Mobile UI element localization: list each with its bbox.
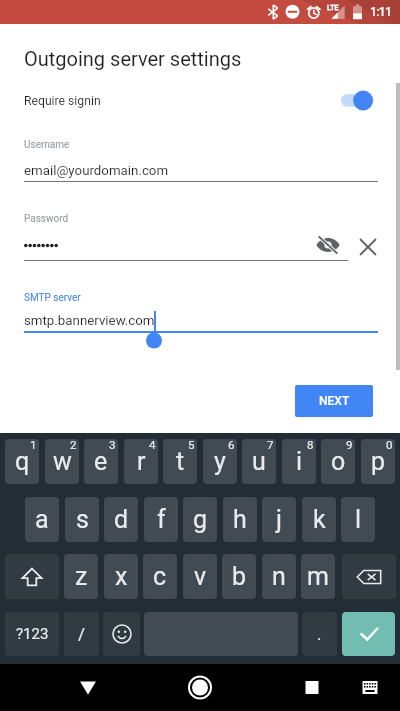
button[interactable]: Clear text bbox=[354, 233, 382, 261]
staticText: p bbox=[371, 447, 386, 476]
button[interactable]: NEXT bbox=[295, 385, 373, 417]
button[interactable]: t bbox=[163, 439, 197, 484]
staticText: f bbox=[157, 505, 166, 534]
button[interactable] bbox=[342, 554, 396, 599]
staticText: NEXT bbox=[319, 394, 350, 408]
button[interactable]: h bbox=[223, 497, 257, 542]
button[interactable]: n bbox=[262, 554, 296, 599]
staticText: e bbox=[94, 447, 108, 476]
staticText: h bbox=[233, 505, 247, 534]
staticText: t bbox=[176, 447, 185, 476]
staticText: 2 bbox=[70, 439, 77, 451]
staticText: q bbox=[15, 447, 30, 476]
button[interactable]: z bbox=[64, 554, 98, 599]
button[interactable]: y bbox=[203, 439, 237, 484]
staticText: LTE bbox=[327, 3, 339, 11]
button[interactable]: Show password bbox=[314, 231, 342, 259]
button[interactable]: c bbox=[143, 554, 177, 599]
button[interactable]: b bbox=[222, 554, 256, 599]
button[interactable]: Switch keyboard bbox=[344, 664, 396, 711]
staticText: y bbox=[214, 447, 226, 476]
button[interactable] bbox=[103, 612, 140, 656]
staticText: g bbox=[193, 505, 208, 534]
staticText: Username bbox=[24, 139, 70, 151]
staticText: z bbox=[75, 562, 88, 591]
staticText: s bbox=[76, 505, 89, 534]
staticText: n bbox=[272, 562, 286, 591]
button[interactable]: i bbox=[282, 439, 316, 484]
staticText: smtp.bannerview.com bbox=[24, 313, 155, 329]
button[interactable] bbox=[5, 554, 59, 599]
staticText: 1 bbox=[30, 439, 37, 451]
staticText: Outgoing server settings bbox=[24, 47, 242, 70]
button[interactable]: f bbox=[144, 497, 178, 542]
button[interactable]: m bbox=[301, 554, 335, 599]
button[interactable]: ?123 bbox=[5, 612, 59, 656]
staticText: 6 bbox=[228, 439, 235, 451]
button[interactable]: Home bbox=[174, 664, 226, 711]
staticText: v bbox=[194, 562, 207, 591]
staticText: 7 bbox=[267, 439, 274, 451]
button[interactable]: l bbox=[341, 497, 375, 542]
button[interactable]: e bbox=[84, 439, 118, 484]
staticText: w bbox=[53, 447, 72, 476]
staticText: d bbox=[114, 505, 129, 534]
button[interactable]: k bbox=[302, 497, 336, 542]
button[interactable]: u bbox=[242, 439, 276, 484]
staticText: / bbox=[78, 624, 86, 644]
button[interactable]: Back bbox=[62, 664, 114, 711]
button[interactable] bbox=[342, 612, 395, 656]
button[interactable]: o bbox=[321, 439, 355, 484]
button[interactable]: q bbox=[5, 439, 39, 484]
staticText: l bbox=[355, 505, 362, 534]
button[interactable]: d bbox=[104, 497, 138, 542]
button[interactable]: Recents bbox=[286, 664, 338, 711]
staticText: 1:11 bbox=[370, 5, 392, 19]
staticText: . bbox=[317, 624, 322, 644]
button[interactable]: x bbox=[104, 554, 138, 599]
staticText: k bbox=[313, 505, 326, 534]
button[interactable]: p bbox=[361, 439, 395, 484]
button[interactable]: g bbox=[183, 497, 217, 542]
staticText: r bbox=[137, 447, 146, 476]
staticText: 9 bbox=[346, 439, 353, 451]
staticText: a bbox=[35, 505, 49, 534]
button[interactable]: / bbox=[64, 612, 99, 656]
staticText: 5 bbox=[188, 439, 195, 451]
staticText: 3 bbox=[109, 439, 116, 451]
staticText: o bbox=[331, 447, 346, 476]
staticText: Require signin bbox=[24, 94, 101, 108]
staticText: SMTP server bbox=[24, 292, 81, 304]
button[interactable]: a bbox=[25, 497, 59, 542]
staticText: 0 bbox=[386, 439, 393, 451]
button[interactable]: r bbox=[124, 439, 158, 484]
staticText: ?123 bbox=[16, 625, 49, 643]
staticText: 8 bbox=[307, 439, 314, 451]
staticText: c bbox=[153, 562, 167, 591]
button[interactable]: w bbox=[45, 439, 79, 484]
staticText: Password bbox=[24, 213, 69, 225]
staticText: j bbox=[276, 505, 282, 534]
staticText: m bbox=[307, 562, 329, 591]
staticText: email@yourdomain.com bbox=[24, 163, 169, 179]
staticText: i bbox=[296, 447, 303, 476]
staticText: x bbox=[115, 562, 128, 591]
button[interactable]: j bbox=[262, 497, 296, 542]
staticText: u bbox=[252, 447, 266, 476]
button[interactable]: . bbox=[302, 612, 337, 656]
button[interactable]: v bbox=[183, 554, 217, 599]
staticText: b bbox=[232, 562, 247, 591]
button[interactable]: s bbox=[65, 497, 99, 542]
button[interactable]: Require signin bbox=[0, 86, 400, 115]
staticText: 4 bbox=[149, 439, 156, 451]
